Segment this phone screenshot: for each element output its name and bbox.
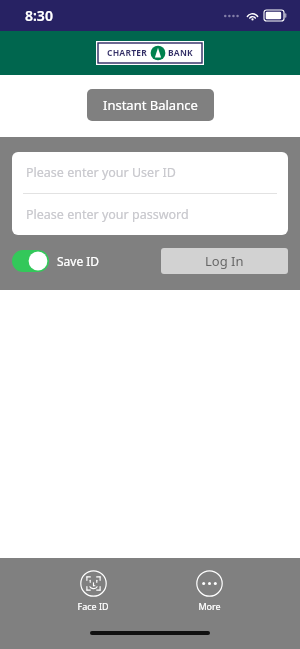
staticText: 8:30 — [25, 6, 53, 25]
staticText: BANK — [168, 47, 193, 59]
staticText: Please enter your User ID — [26, 164, 176, 181]
staticText: More — [198, 600, 221, 612]
staticText: Log In — [205, 252, 244, 270]
staticText: Face ID — [77, 600, 109, 612]
staticText: Instant Balance — [103, 96, 198, 114]
button[interactable]: Please enter your User ID — [12, 152, 288, 193]
staticText: CHARTER — [107, 47, 148, 59]
button[interactable]: More — [186, 568, 233, 614]
button[interactable]: Log In — [161, 248, 288, 274]
button[interactable]: Please enter your password — [12, 194, 288, 235]
staticText: Save ID — [57, 253, 100, 269]
button[interactable]: Face ID — [67, 568, 119, 614]
staticText: Please enter your password — [26, 206, 189, 223]
button[interactable]: Save ID — [12, 250, 100, 272]
button[interactable]: Instant Balance — [87, 89, 214, 121]
